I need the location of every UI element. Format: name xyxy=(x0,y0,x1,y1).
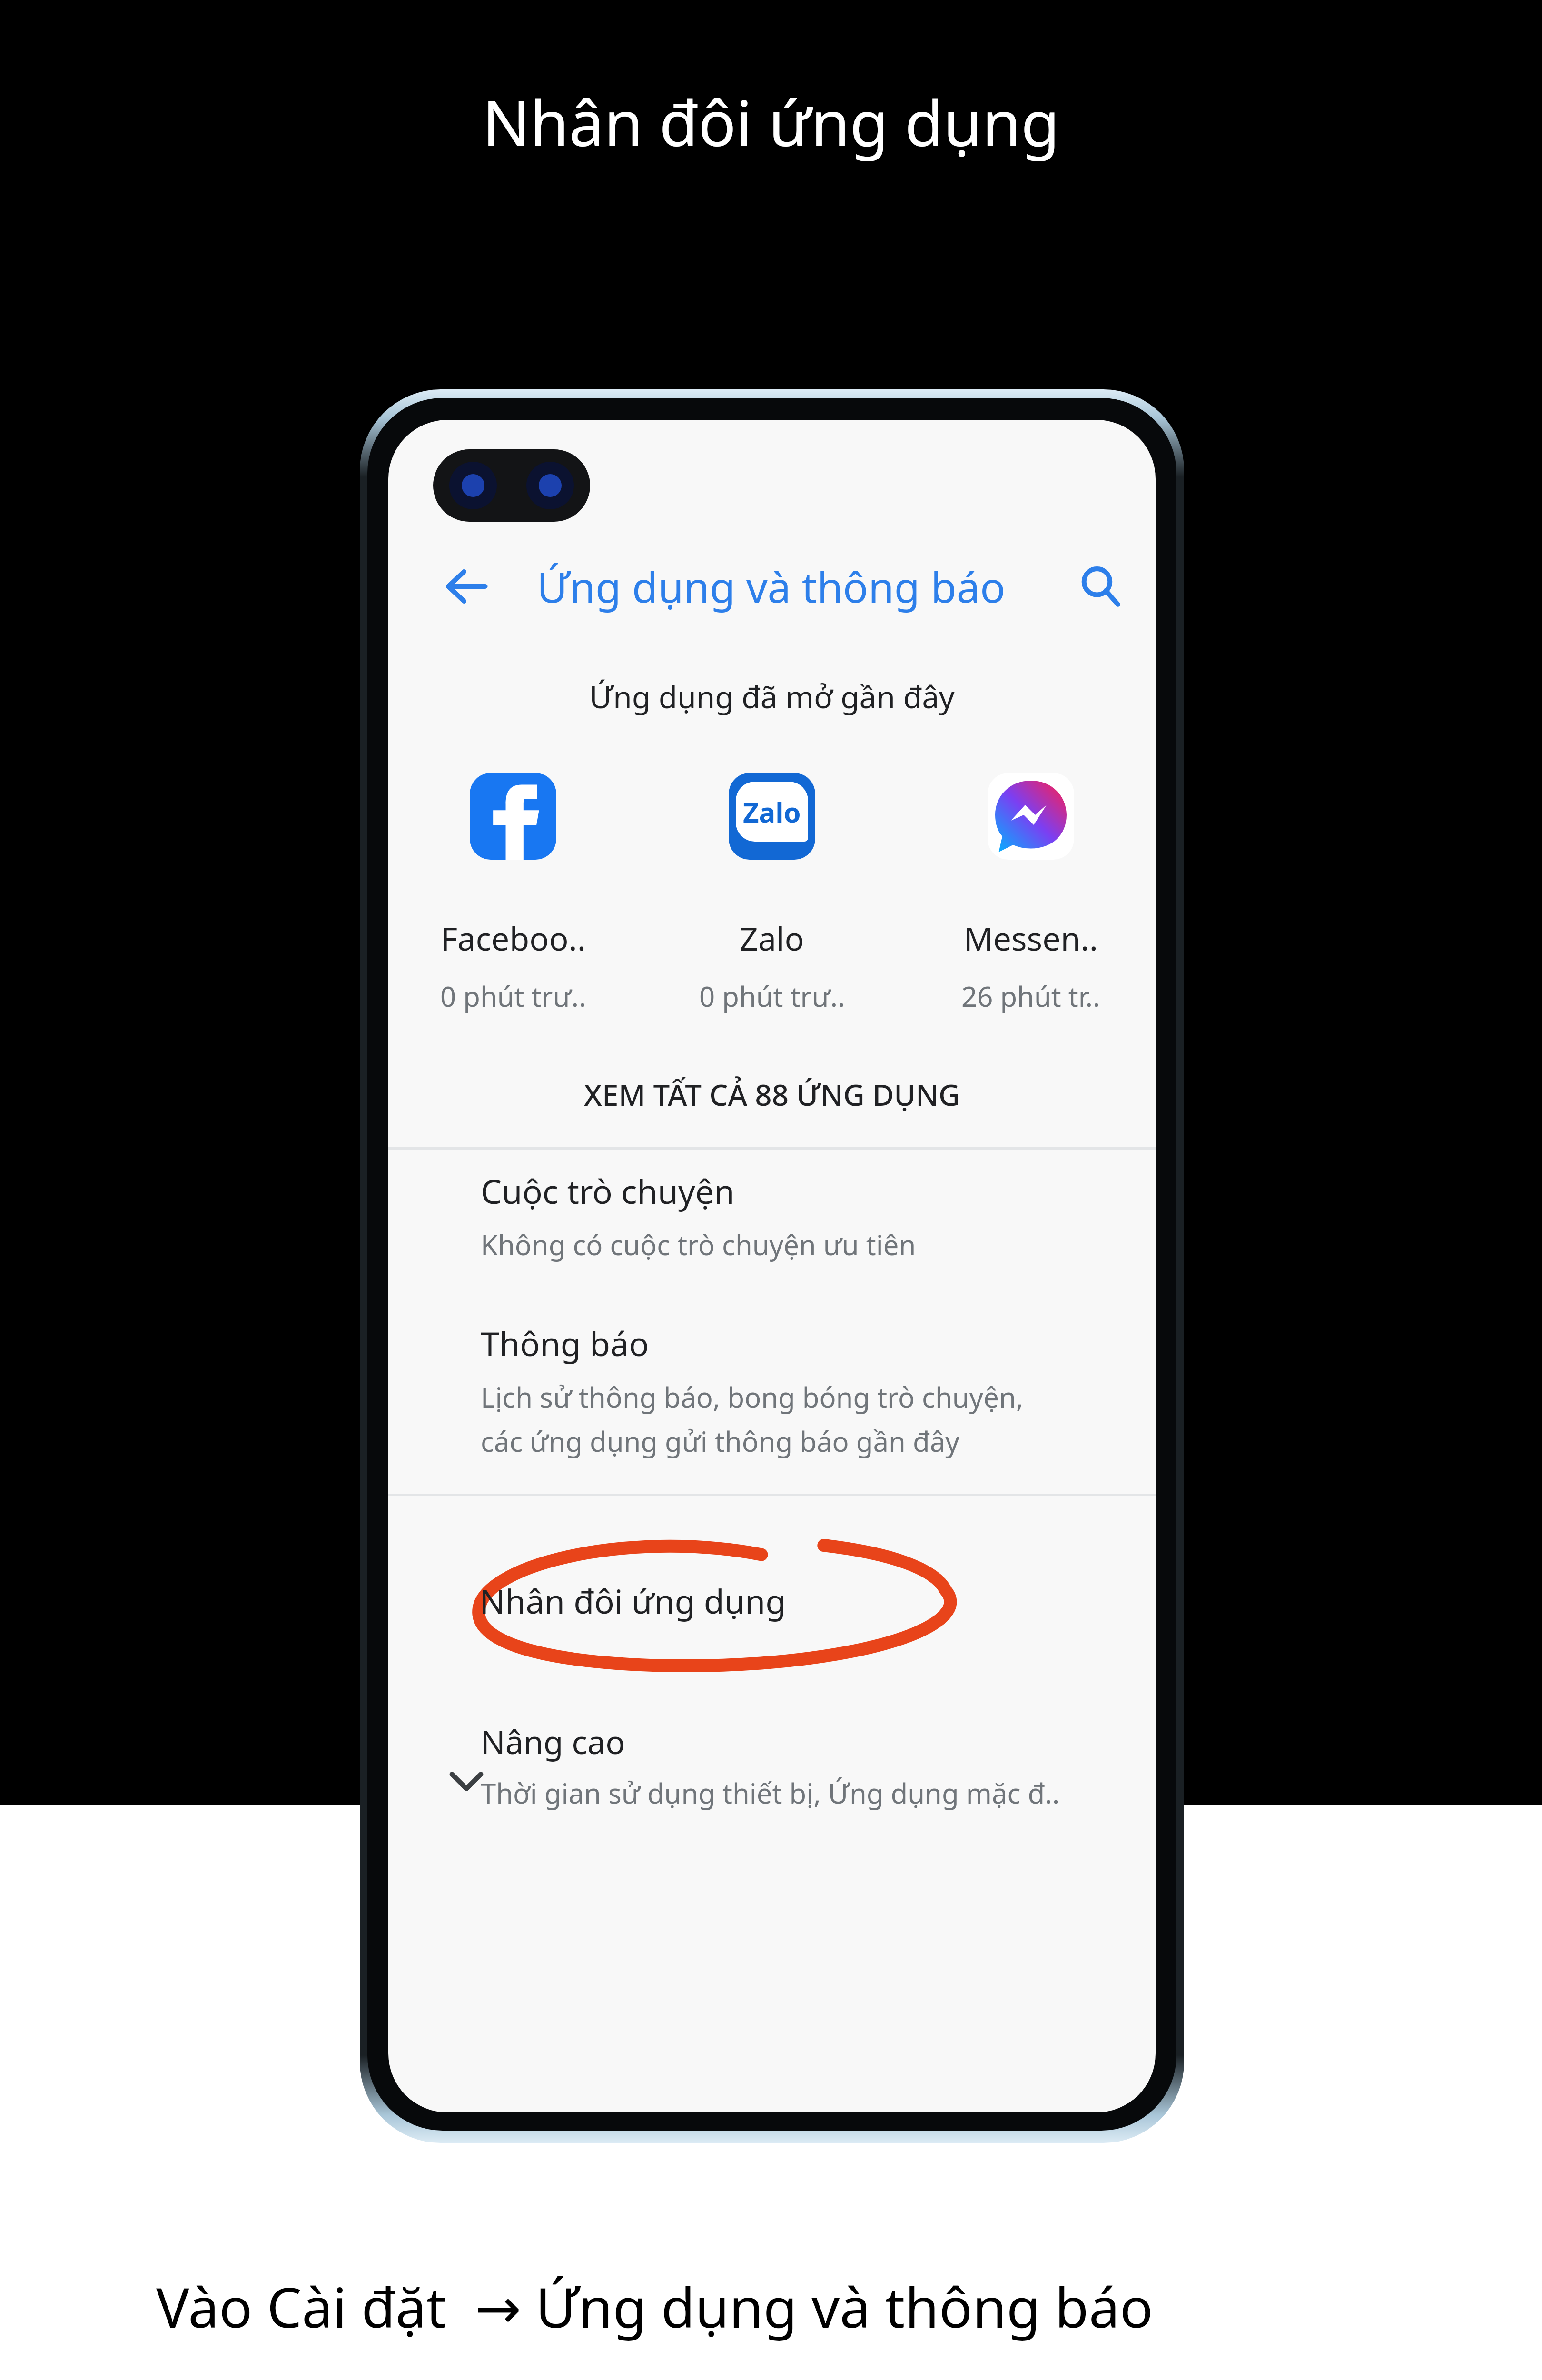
button[interactable]: Back xyxy=(438,558,495,615)
staticText: 26 phút tr.. xyxy=(961,977,1100,1015)
button[interactable]: Nâng cao xyxy=(388,1708,1156,1846)
button[interactable]: XEM TẤT CẢ 88 ỨNG DỤNG xyxy=(388,1054,1156,1135)
button[interactable]: Thông báo xyxy=(388,1320,1156,1460)
staticText: Nhân đôi ứng dụng xyxy=(480,1578,786,1623)
staticText: Vào Cài đặt → Ứng dụng và thông báo xyxy=(156,2269,1153,2344)
staticText: Thông báo xyxy=(481,1320,649,1366)
staticText: Cuộc trò chuyện xyxy=(481,1168,735,1213)
staticText: Zalo xyxy=(740,916,804,960)
staticText: Messen.. xyxy=(964,916,1098,960)
button[interactable]: Nhân đôi ứng dụng xyxy=(480,1570,786,1631)
staticText: 0 phút trư.. xyxy=(440,977,586,1015)
staticText: Không có cuộc trò chuyện ưu tiên xyxy=(481,1226,916,1263)
staticText: 0 phút trư.. xyxy=(699,977,845,1015)
button[interactable]: Search xyxy=(1072,558,1129,615)
button[interactable]: Faceboo.. xyxy=(408,773,618,1015)
staticText: Nâng cao xyxy=(481,1719,625,1764)
staticText: Faceboo.. xyxy=(441,916,586,960)
button[interactable]: Cuộc trò chuyện xyxy=(388,1168,1156,1263)
button[interactable]: Ứng dụng và thông báo xyxy=(537,552,1006,621)
staticText: Nhân đôi ứng dụng xyxy=(482,79,1060,165)
staticText: Ứng dụng đã mở gần đây xyxy=(388,676,1156,717)
staticText: Ứng dụng và thông báo xyxy=(537,558,1006,615)
staticText: XEM TẤT CẢ 88 ỨNG DỤNG xyxy=(584,1074,960,1114)
button[interactable]: Messen.. xyxy=(926,773,1136,1015)
button[interactable]: Zalo xyxy=(667,773,877,1015)
staticText: Thời gian sử dụng thiết bị, Ứng dụng mặc… xyxy=(481,1774,1060,1812)
staticText: các ứng dụng gửi thông báo gần đây xyxy=(481,1422,959,1460)
staticText: Lịch sử thông báo, bong bóng trò chuyện, xyxy=(481,1378,1024,1416)
staticText: Zalo xyxy=(743,793,801,831)
